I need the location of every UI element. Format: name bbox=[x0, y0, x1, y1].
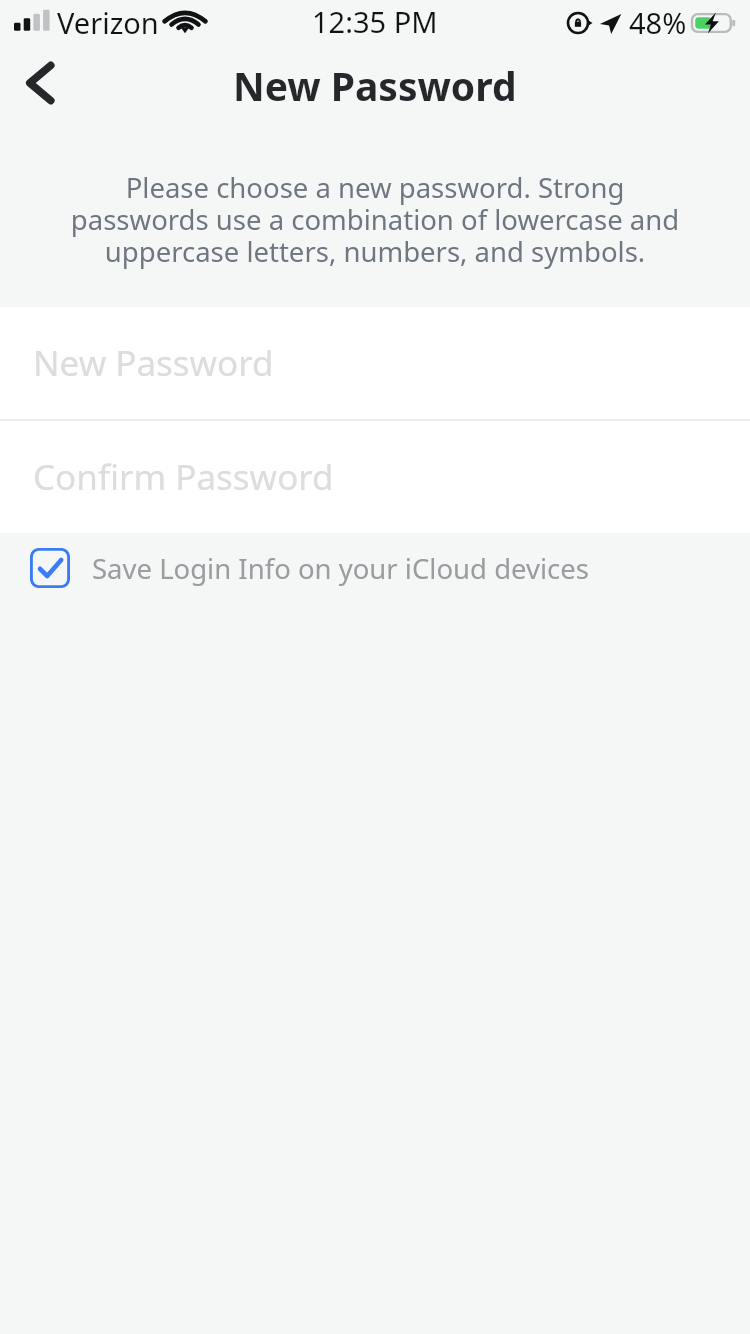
staticText: Please choose a new password. Strong pas… bbox=[56, 169, 694, 270]
button[interactable]: Back bbox=[8, 51, 72, 115]
button[interactable]: Save Login Info on your iCloud devices bbox=[0, 533, 750, 603]
button[interactable]: Confirm Password bbox=[0, 421, 750, 533]
staticText: 48% bbox=[629, 3, 687, 42]
staticText: Confirm Password bbox=[33, 453, 334, 501]
button[interactable]: New Password bbox=[0, 307, 750, 419]
staticText: New Password bbox=[33, 339, 274, 387]
staticText: Verizon bbox=[57, 3, 159, 42]
staticText: New Password bbox=[233, 59, 517, 112]
staticText: Save Login Info on your iCloud devices bbox=[92, 550, 589, 587]
staticText: 12:35 PM bbox=[312, 2, 438, 41]
